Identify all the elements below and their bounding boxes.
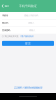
staticText: 请输入手机号码 [24, 14, 38, 17]
staticText: 返回 [4, 4, 8, 7]
button[interactable]: 登录密码 [0, 27, 56, 34]
staticText: 忘记密码？请联系在线客服处理 [14, 86, 42, 89]
staticText: 《用户服务协议》 [19, 35, 35, 38]
staticText: 请输入 [29, 29, 35, 32]
staticText: 请输入 [28, 21, 34, 24]
staticText: 我已阅读并同意 [4, 35, 18, 38]
button[interactable]: 我已阅读并同意 [0, 34, 35, 39]
staticText: 提交 [25, 42, 31, 45]
button[interactable]: 提交 [2, 41, 54, 46]
button[interactable]: 验证码 [0, 19, 56, 26]
staticText: 验证码 [2, 21, 8, 24]
button[interactable]: 忘记密码？请联系在线客服处理 [14, 86, 42, 90]
button[interactable]: 手机号 [0, 12, 56, 19]
staticText: 手机号 [2, 14, 8, 17]
staticText: 登录密码 [2, 29, 10, 32]
button[interactable]: 返回 [0, 0, 10, 12]
staticText: 手机号码验证 [19, 4, 37, 8]
